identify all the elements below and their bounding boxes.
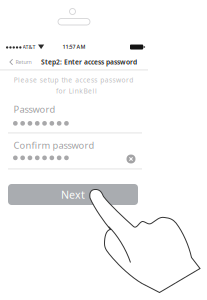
staticText: AT&T	[22, 43, 35, 50]
button[interactable]: Next	[8, 184, 138, 205]
button[interactable]: Return	[9, 58, 31, 66]
staticText: Confirm password	[13, 139, 94, 151]
staticText: Step2: Enter access password	[41, 58, 137, 66]
staticText: 11:57 AM	[62, 43, 85, 50]
button[interactable]: Clear confirm password	[126, 154, 135, 163]
staticText: Please setup the access password	[14, 75, 133, 84]
staticText: Password	[13, 103, 55, 115]
staticText: Return	[15, 58, 31, 66]
staticText: for LinkBell	[56, 86, 97, 95]
staticText: Next	[61, 187, 85, 202]
